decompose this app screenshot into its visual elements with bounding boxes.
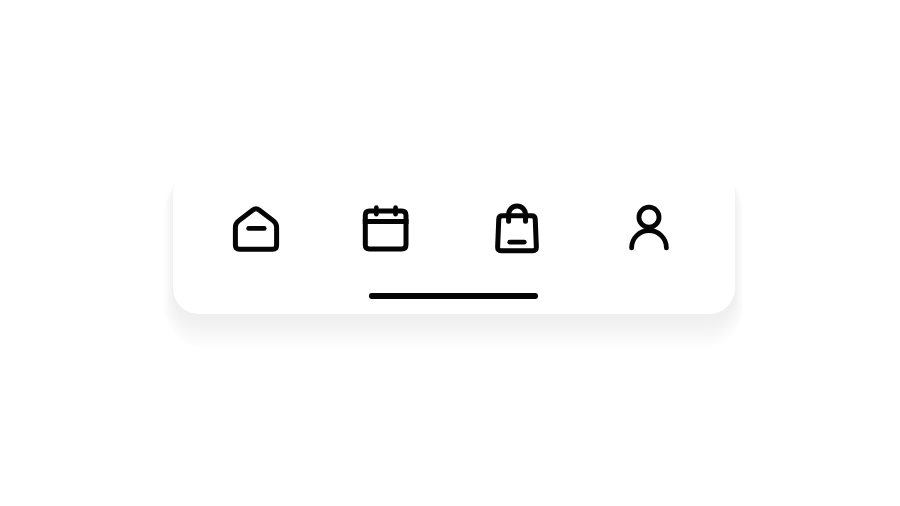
- button[interactable]: Profile: [594, 168, 735, 314]
- button[interactable]: Home: [173, 168, 314, 314]
- button[interactable]: Shopping bag: [454, 168, 595, 314]
- button[interactable]: Calendar: [313, 168, 454, 314]
